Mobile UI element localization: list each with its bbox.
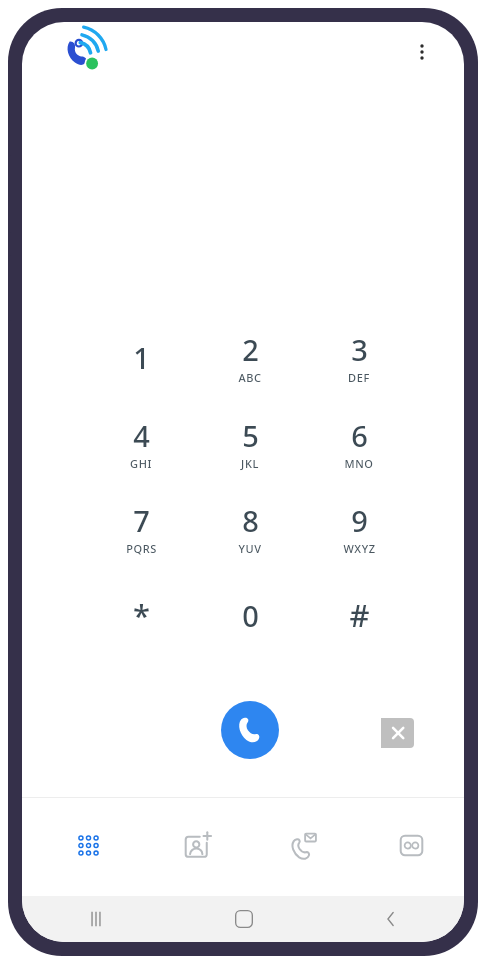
staticText: 6 (351, 416, 368, 455)
button[interactable]: Backspace (366, 718, 414, 748)
button[interactable]: Call app (60, 30, 104, 74)
button[interactable]: More options (400, 30, 444, 74)
button[interactable]: Call (221, 701, 279, 759)
staticText: PQRS (126, 541, 157, 556)
button[interactable]: Recents (22, 896, 170, 942)
button[interactable]: 8 (202, 490, 298, 566)
button[interactable]: 0 (202, 577, 298, 653)
staticText: 0 (242, 596, 259, 635)
button[interactable]: 6 (311, 405, 407, 481)
button[interactable]: Call message (277, 819, 329, 871)
staticText: 9 (351, 501, 368, 540)
staticText: 7 (133, 501, 150, 540)
staticText: DEF (348, 370, 370, 385)
staticText: ABC (238, 370, 262, 385)
button[interactable]: 4 (93, 405, 189, 481)
button[interactable]: * (93, 577, 189, 653)
staticText: MNO (344, 456, 374, 471)
staticText: * (133, 594, 150, 636)
staticText: 2 (242, 330, 259, 369)
button[interactable]: Home (170, 896, 317, 942)
staticText: WXYZ (343, 541, 376, 556)
button[interactable]: 3 (311, 319, 407, 395)
staticText: # (349, 594, 370, 636)
button[interactable]: Dialpad (62, 819, 114, 871)
button[interactable]: 7 (93, 490, 189, 566)
staticText: 3 (351, 330, 368, 369)
staticText: YUV (238, 541, 262, 556)
staticText: 4 (133, 416, 150, 455)
button[interactable]: # (311, 577, 407, 653)
staticText: GHI (130, 456, 152, 471)
button[interactable]: Back (317, 896, 464, 942)
button[interactable]: 5 (202, 405, 298, 481)
staticText: 8 (242, 501, 259, 540)
staticText: JKL (241, 456, 259, 471)
button[interactable]: Add contact (170, 819, 222, 871)
button[interactable]: Voicemail (385, 819, 437, 871)
button[interactable]: 2 (202, 319, 298, 395)
staticText: 1 (133, 338, 150, 377)
staticText: 5 (242, 416, 259, 455)
button[interactable]: 1 (93, 319, 189, 395)
button[interactable]: 9 (311, 490, 407, 566)
